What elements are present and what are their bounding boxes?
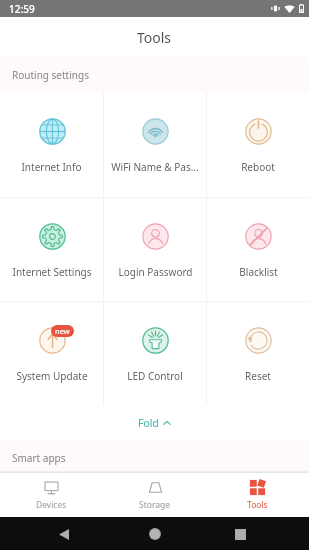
button[interactable]: Recents [224,518,256,550]
staticText: Internet Info [21,160,82,174]
staticText: LED Control [127,369,183,383]
button[interactable]: Login Password [104,198,206,301]
staticText: 12:59 [9,2,35,16]
staticText: Blacklist [239,265,278,279]
button[interactable]: Back [48,518,80,550]
staticText: WiFi Name & Pas... [111,160,199,174]
staticText: new [55,326,70,336]
button[interactable]: Internet Info [0,93,103,197]
staticText: Login Password [118,265,193,279]
staticText: Devices [36,499,67,511]
staticText: Storage [139,499,171,511]
staticText: Reboot [241,160,275,174]
button[interactable]: Storage [103,473,206,517]
staticText: System Update [16,369,88,383]
staticText: Fold [138,416,159,430]
button[interactable]: Reset [207,302,309,405]
button[interactable]: Home [139,518,171,550]
button[interactable]: WiFi Name & Pas... [104,93,206,197]
button[interactable]: Fold [126,410,183,436]
button[interactable]: new [0,302,103,405]
button[interactable]: Internet Settings [0,198,103,301]
button[interactable]: Blacklist [207,198,309,301]
staticText: Smart apps [12,451,66,465]
staticText: Routing settings [12,68,89,82]
button[interactable]: LED Control [104,302,206,405]
button[interactable]: Devices [0,473,103,517]
staticText: Tools [137,28,172,47]
button[interactable]: Tools [206,473,309,517]
staticText: Internet Settings [12,265,92,279]
button[interactable]: Reboot [207,93,309,197]
staticText: Reset [245,369,271,383]
staticText: Tools [247,499,268,511]
